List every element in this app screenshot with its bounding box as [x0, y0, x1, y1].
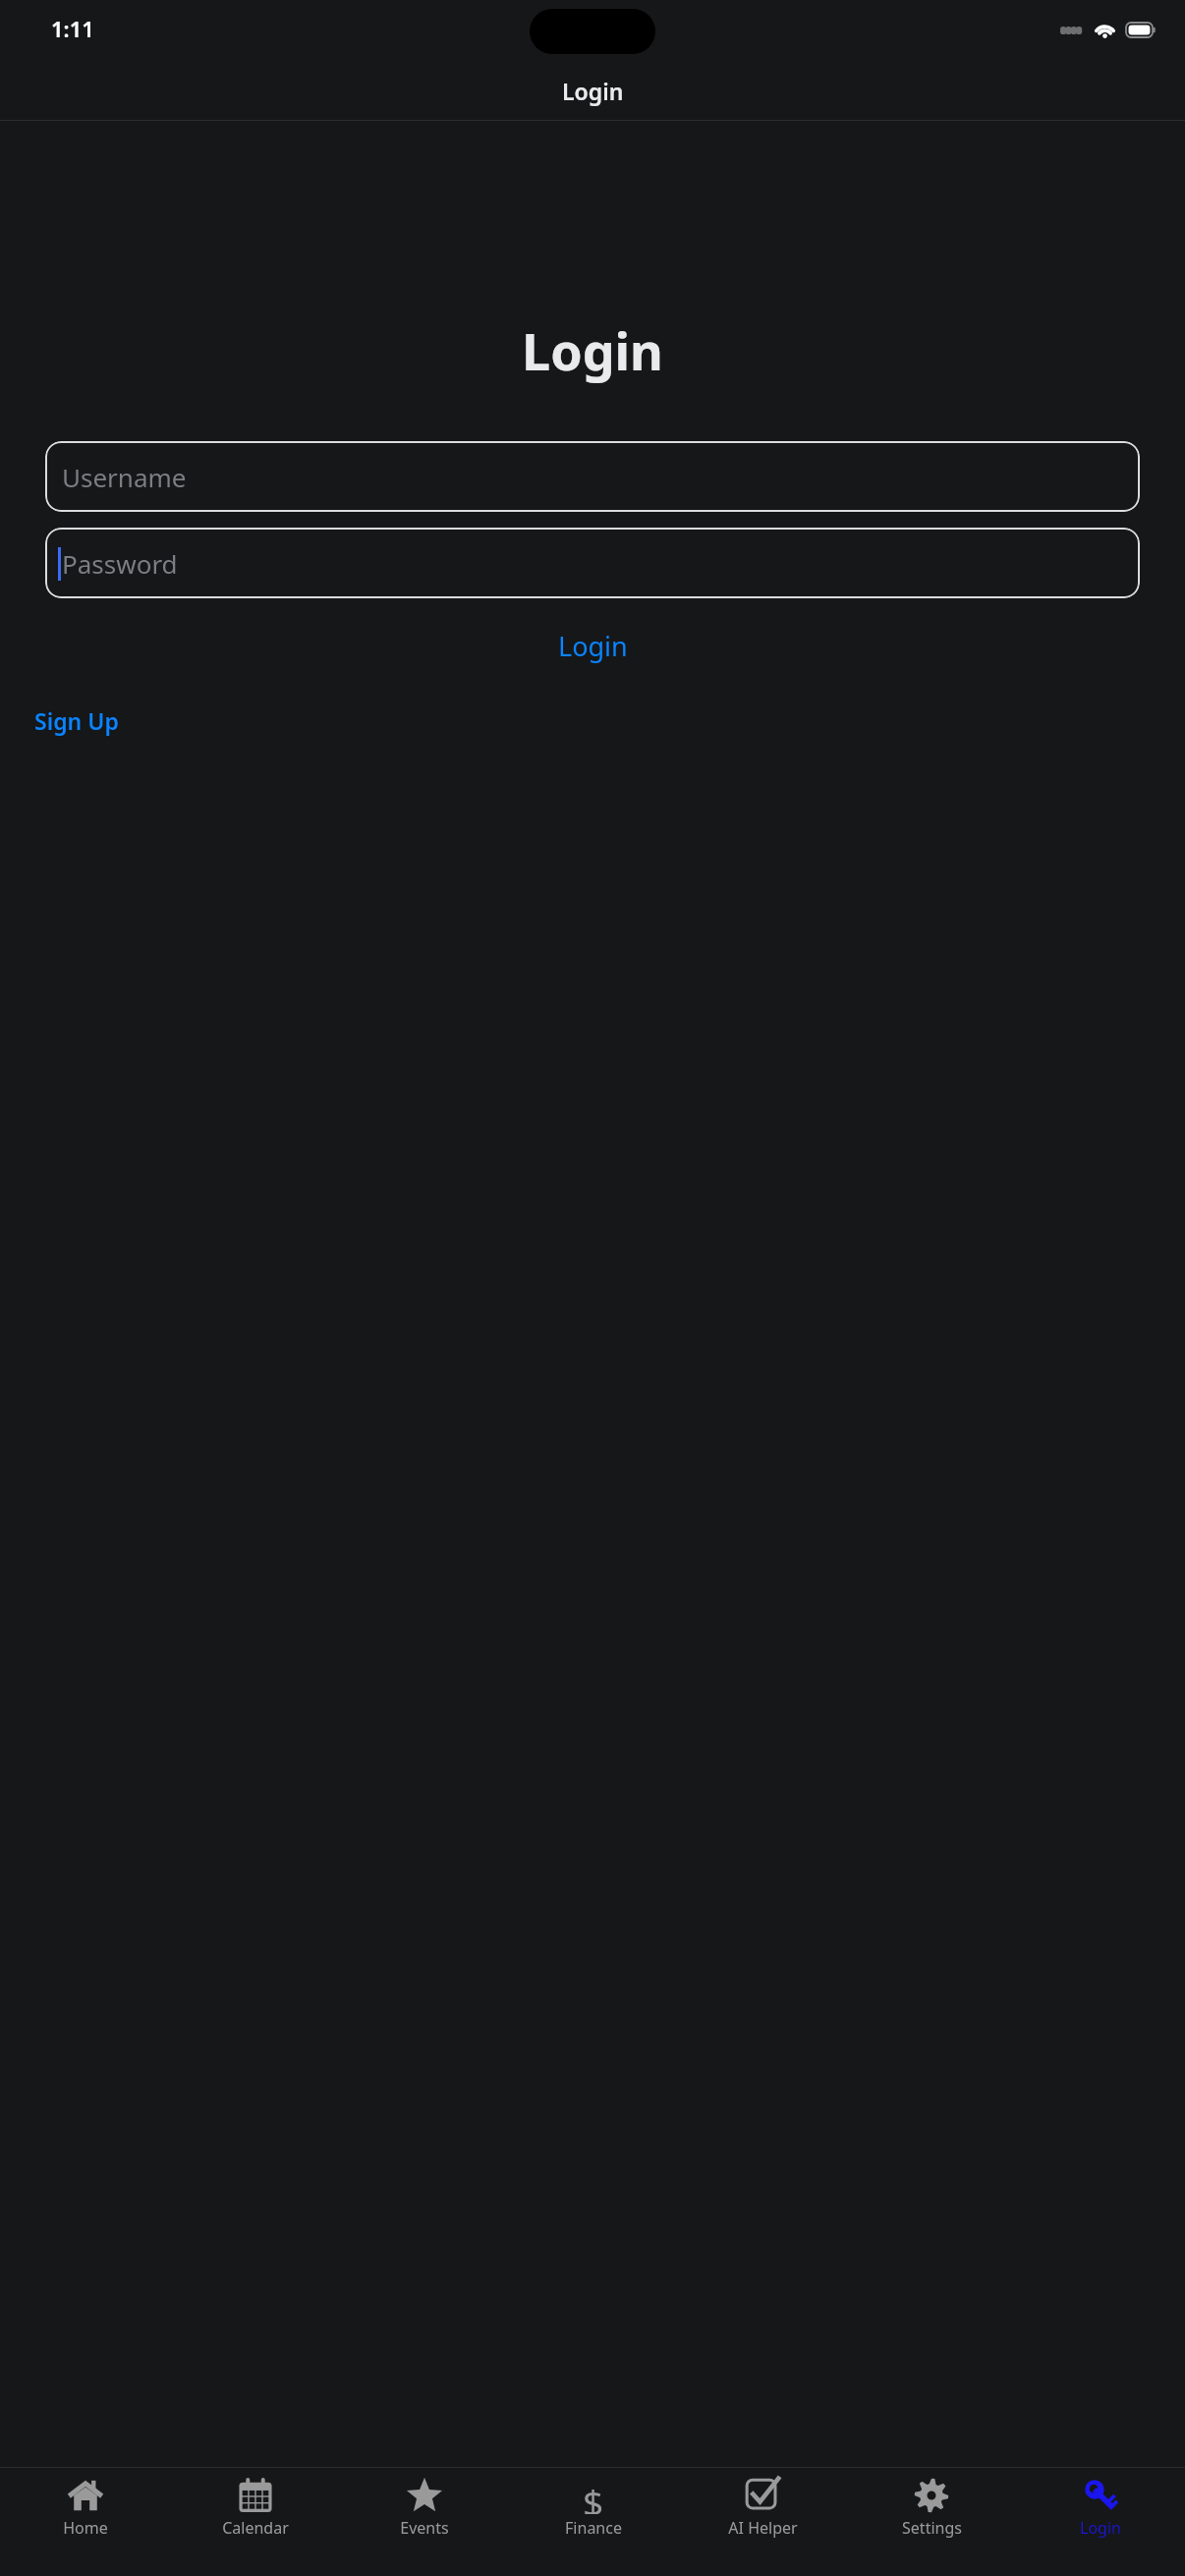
staticText: Home: [63, 2517, 108, 2539]
button[interactable]: Login: [0, 618, 1185, 674]
staticText: AI Helper: [728, 2517, 798, 2539]
button[interactable]: Password: [45, 528, 1140, 598]
button[interactable]: AI Helper: [678, 2468, 847, 2576]
staticText: $: [583, 2477, 604, 2514]
button[interactable]: Sign Up: [31, 700, 122, 742]
button[interactable]: Home: [0, 2468, 170, 2576]
staticText: Events: [400, 2517, 449, 2539]
button[interactable]: Calendar: [170, 2468, 340, 2576]
staticText: Login: [1080, 2517, 1121, 2539]
staticText: Settings: [902, 2517, 962, 2539]
staticText: Login: [558, 628, 628, 664]
staticText: Sign Up: [34, 705, 119, 736]
button[interactable]: Login: [1016, 2468, 1185, 2576]
staticText: Login: [562, 76, 624, 106]
button[interactable]: Finance: [509, 2468, 678, 2576]
staticText: 1:11: [51, 14, 94, 43]
button[interactable]: Settings: [847, 2468, 1016, 2576]
button[interactable]: Events: [340, 2468, 509, 2576]
staticText: Password: [62, 546, 178, 581]
button[interactable]: Username: [45, 441, 1140, 512]
staticText: Finance: [565, 2517, 622, 2539]
staticText: Username: [62, 460, 187, 494]
staticText: Login: [0, 315, 1185, 385]
staticText: Calendar: [222, 2517, 289, 2539]
